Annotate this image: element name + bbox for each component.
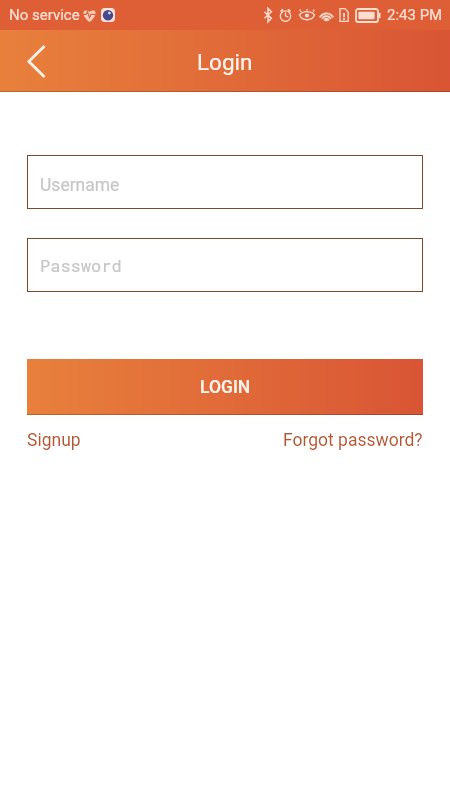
button[interactable]: Back bbox=[0, 30, 62, 92]
staticText: LOGIN bbox=[200, 377, 251, 398]
button[interactable]: Forgot password? bbox=[283, 428, 423, 449]
staticText: Password bbox=[40, 254, 122, 276]
button[interactable]: Password bbox=[27, 238, 423, 292]
staticText: No service bbox=[9, 6, 80, 24]
staticText: 2:43 PM bbox=[387, 6, 443, 24]
staticText: Username bbox=[40, 175, 120, 196]
button[interactable]: LOGIN bbox=[27, 359, 423, 415]
button[interactable]: Signup bbox=[27, 428, 81, 449]
button[interactable]: Username bbox=[27, 155, 423, 209]
staticText: Login bbox=[197, 49, 253, 75]
